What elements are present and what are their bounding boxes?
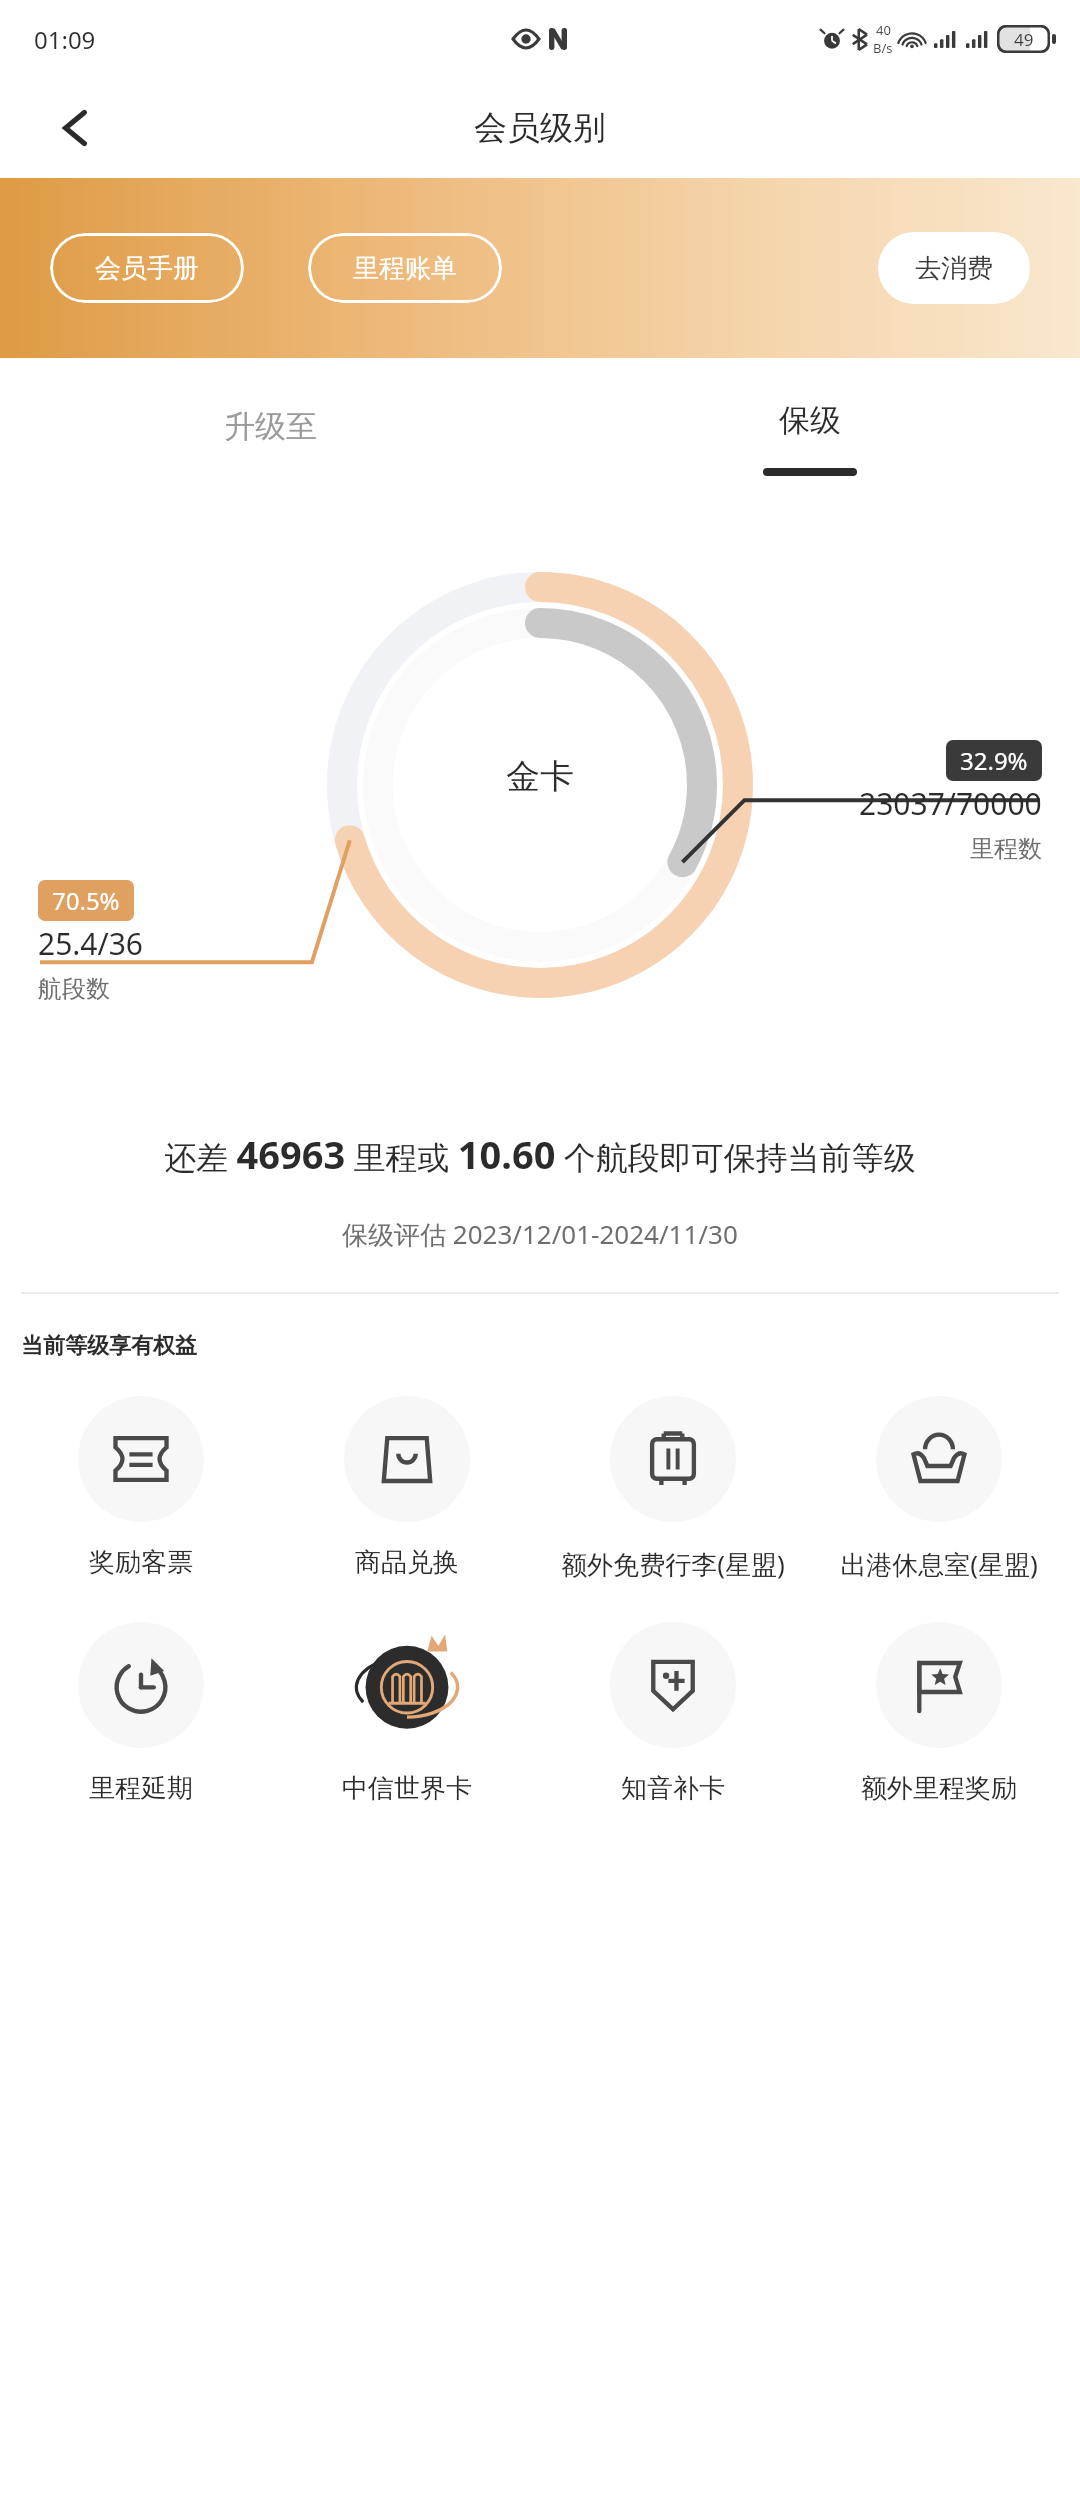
staticText: 知音补卡 xyxy=(621,1772,725,1805)
staticText: 航段数 xyxy=(38,974,110,1004)
staticText: 70.5% xyxy=(52,884,120,917)
staticText: 去消费 xyxy=(915,252,993,285)
button[interactable]: 出港休息室(星盟) xyxy=(814,1396,1064,1582)
button[interactable]: 额外里程奖励 xyxy=(814,1622,1064,1805)
staticText: 里程数 xyxy=(970,834,1042,864)
staticText: 25.4/36 xyxy=(38,923,143,964)
staticText: 会员手册 xyxy=(95,252,199,285)
staticText: 49 xyxy=(1014,28,1034,51)
button[interactable]: 知音补卡 xyxy=(548,1622,798,1805)
staticText: 金卡 xyxy=(506,755,574,798)
staticText: 里程延期 xyxy=(89,1772,193,1805)
staticText: 32.9% xyxy=(960,744,1028,777)
button[interactable]: Back xyxy=(50,102,102,154)
staticText: 01:09 xyxy=(34,23,96,56)
staticText: 当前等级享有权益 xyxy=(21,1332,197,1360)
staticText: 23037/70000 xyxy=(859,783,1042,824)
staticText: 额外免费行李(星盟) xyxy=(561,1546,785,1582)
staticText: 奖励客票 xyxy=(89,1546,193,1579)
staticText: 商品兑换 xyxy=(355,1546,459,1579)
button[interactable]: 里程延期 xyxy=(16,1622,266,1805)
button[interactable]: 额外免费行李(星盟) xyxy=(548,1396,798,1582)
staticText: 40 xyxy=(876,21,891,39)
button[interactable]: 商品兑换 xyxy=(282,1396,532,1579)
staticText: 还差 46963 里程或 10.60 个航段即可保持当前等级 xyxy=(164,1128,916,1180)
button[interactable]: 去消费 xyxy=(878,232,1030,304)
staticText: 会员级别 xyxy=(474,107,606,149)
staticText: 升级至 xyxy=(224,407,317,446)
staticText: 额外里程奖励 xyxy=(861,1772,1017,1805)
button[interactable]: 升级至 xyxy=(0,358,540,518)
button[interactable]: 奖励客票 xyxy=(16,1396,266,1579)
staticText: 保级评估 2023/12/01-2024/11/30 xyxy=(342,1216,738,1252)
staticText: 里程账单 xyxy=(353,252,457,285)
button[interactable]: 会员手册 xyxy=(50,233,244,303)
staticText: 保级 xyxy=(779,401,841,440)
staticText: 中信世界卡 xyxy=(342,1772,472,1805)
button[interactable]: 保级 xyxy=(540,358,1080,518)
button[interactable]: 中信世界卡 xyxy=(282,1622,532,1805)
staticText: 出港休息室(星盟) xyxy=(840,1546,1038,1582)
button[interactable]: 里程账单 xyxy=(308,233,502,303)
staticText: B/s xyxy=(873,39,893,57)
